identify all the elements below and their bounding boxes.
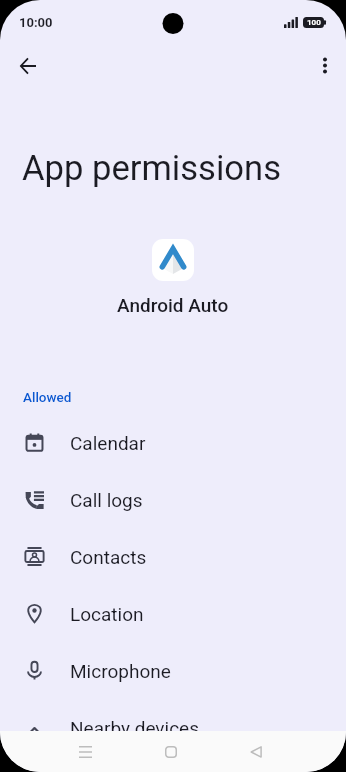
button[interactable]: Home	[145, 737, 196, 767]
button[interactable]: More options	[305, 46, 345, 86]
staticText: Android Auto	[117, 294, 229, 316]
staticText: App permissions	[22, 148, 282, 189]
button[interactable]: Recent apps	[60, 737, 111, 767]
staticText: Allowed	[23, 389, 72, 405]
button[interactable]: Call logs	[0, 471, 346, 528]
button[interactable]: Navigate up	[8, 46, 47, 85]
staticText: Location	[70, 603, 144, 625]
staticText: 10:00	[19, 15, 53, 30]
button[interactable]: Nearby devices	[0, 699, 346, 756]
staticText: Call logs	[70, 489, 143, 511]
button[interactable]: Location	[0, 585, 346, 642]
staticText: 100	[307, 18, 321, 27]
button[interactable]: Contacts	[0, 528, 346, 585]
staticText: Microphone	[70, 660, 171, 682]
button[interactable]: Back	[230, 737, 281, 767]
staticText: Calendar	[70, 432, 146, 454]
staticText: Nearby devices	[70, 717, 199, 739]
button[interactable]: Microphone	[0, 642, 346, 699]
staticText: Contacts	[70, 546, 147, 568]
button[interactable]: Calendar	[0, 414, 346, 471]
